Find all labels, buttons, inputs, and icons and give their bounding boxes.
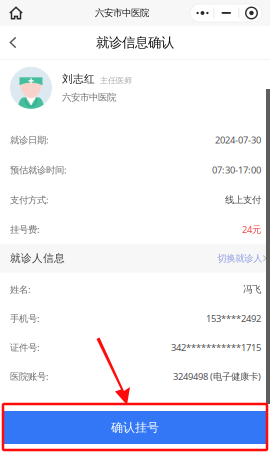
staticText: 医院账号: <box>10 370 49 382</box>
button[interactable]: 确认挂号 <box>4 411 266 444</box>
staticText: 六安市中医院 <box>95 7 149 19</box>
staticText: 342***********1715 <box>171 341 261 353</box>
staticText: 证件号: <box>10 341 40 353</box>
staticText: 刘志红 <box>62 72 95 86</box>
button[interactable]: Mini program menu <box>190 4 262 22</box>
staticText: 24元 <box>242 223 261 235</box>
staticText: 主任医师 <box>100 76 132 86</box>
staticText: 2024-07-30 <box>215 134 261 146</box>
staticText: 就诊信息确认 <box>96 34 174 51</box>
button[interactable]: 就诊人信息 <box>0 244 270 273</box>
staticText: 就诊人信息 <box>10 252 65 265</box>
button[interactable]: Back <box>0 27 26 57</box>
staticText: 预估就诊时间: <box>10 164 67 176</box>
staticText: 六安市中医院 <box>62 92 116 103</box>
staticText: 挂号费: <box>10 223 40 235</box>
staticText: 确认挂号 <box>111 420 159 435</box>
staticText: 153****2492 <box>206 312 261 324</box>
staticText: 姓名: <box>10 283 31 295</box>
button[interactable]: Home <box>5 0 27 26</box>
staticText: 就诊日期: <box>10 134 49 146</box>
staticText: 手机号: <box>10 312 40 324</box>
staticText: 线上支付 <box>225 194 261 206</box>
staticText: 冯飞 <box>243 284 261 295</box>
staticText: 支付方式: <box>10 194 49 206</box>
staticText: 3249498 (电子健康卡) <box>173 370 261 382</box>
staticText: 切换就诊人 <box>217 253 262 264</box>
staticText: 07:30-17:00 <box>212 164 261 176</box>
